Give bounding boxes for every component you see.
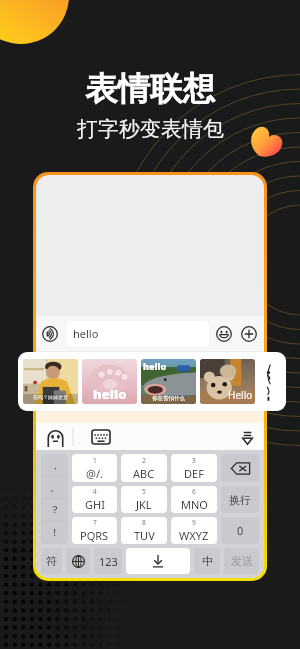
button[interactable]: Add <box>239 324 259 344</box>
button[interactable]: 0 <box>221 517 259 544</box>
button[interactable]: 7 <box>72 517 117 544</box>
button[interactable]: 2 <box>121 454 167 482</box>
staticText: 在吗？妹妹发货 <box>33 394 68 400</box>
button[interactable]: hello <box>67 321 209 346</box>
staticText: GHI <box>85 497 105 512</box>
staticText: ABC <box>133 466 155 481</box>
button[interactable]: 5 <box>121 486 167 513</box>
button[interactable]: Hello <box>200 359 255 404</box>
button[interactable]: 9 <box>171 517 217 544</box>
staticText: 0 <box>237 523 244 538</box>
button[interactable]: Language <box>66 548 90 574</box>
button[interactable]: 3 <box>171 454 217 482</box>
staticText: 6 <box>192 487 196 496</box>
staticText: Hello <box>228 388 253 402</box>
button[interactable]: 8 <box>121 517 167 544</box>
staticText: 1 <box>93 456 97 465</box>
button[interactable]: 。 <box>41 476 68 498</box>
staticText: 符 <box>46 554 57 568</box>
staticText: DEF <box>184 466 204 481</box>
staticText: 9 <box>192 518 196 527</box>
staticText: 表情联想 <box>85 69 215 110</box>
button[interactable]: 发送 <box>224 548 259 574</box>
staticText: 123 <box>99 554 118 569</box>
staticText: ！ <box>50 526 60 539</box>
button[interactable]: Keyboard <box>90 426 112 448</box>
button[interactable]: ， <box>41 454 68 476</box>
staticText: 3 <box>192 456 196 465</box>
staticText: 你在害怕什么 <box>152 395 185 402</box>
staticText: 打字秒变表情包 <box>77 116 224 142</box>
staticText: MNO <box>181 497 208 512</box>
button[interactable]: ！ <box>41 521 68 544</box>
button[interactable]: ？ <box>41 498 68 521</box>
staticText: TUV <box>134 528 155 543</box>
button[interactable]: 123 <box>94 548 122 574</box>
staticText: hello <box>143 360 167 372</box>
button[interactable]: More stickers <box>259 359 286 404</box>
staticText: 7 <box>93 518 97 527</box>
button[interactable]: 1 <box>72 454 117 482</box>
button[interactable]: 4 <box>72 486 117 513</box>
button[interactable]: Voice input <box>40 324 60 344</box>
staticText: @/. <box>86 466 103 481</box>
button[interactable]: 换行 <box>221 486 259 513</box>
staticText: 2 <box>142 456 146 465</box>
button[interactable]: Emoji keyboard <box>44 426 66 448</box>
staticText: hello <box>93 385 127 403</box>
button[interactable]: 在吗？妹妹发货 <box>23 359 78 404</box>
staticText: 发送 <box>231 554 253 568</box>
staticText: hello <box>73 326 99 341</box>
staticText: WXYZ <box>179 528 209 543</box>
staticText: 中 <box>202 554 213 568</box>
staticText: PQRS <box>80 528 109 543</box>
button[interactable]: 中 <box>194 548 220 574</box>
staticText: ， <box>50 459 60 472</box>
staticText: 4 <box>93 487 97 496</box>
staticText: 换行 <box>229 493 251 507</box>
staticText: JKL <box>136 497 152 512</box>
staticText: 5 <box>142 487 146 496</box>
button[interactable]: Hide keyboard <box>236 426 258 448</box>
staticText: 8 <box>142 518 146 527</box>
button[interactable]: hello <box>82 359 137 404</box>
staticText: ？ <box>50 503 60 516</box>
button[interactable]: Space <box>126 548 190 574</box>
button[interactable]: hello <box>141 359 196 404</box>
button[interactable]: Emoji <box>214 324 234 344</box>
button[interactable]: 6 <box>171 486 217 513</box>
button[interactable]: Delete <box>221 454 259 482</box>
staticText: 。 <box>50 481 60 494</box>
button[interactable]: 符 <box>41 548 62 574</box>
